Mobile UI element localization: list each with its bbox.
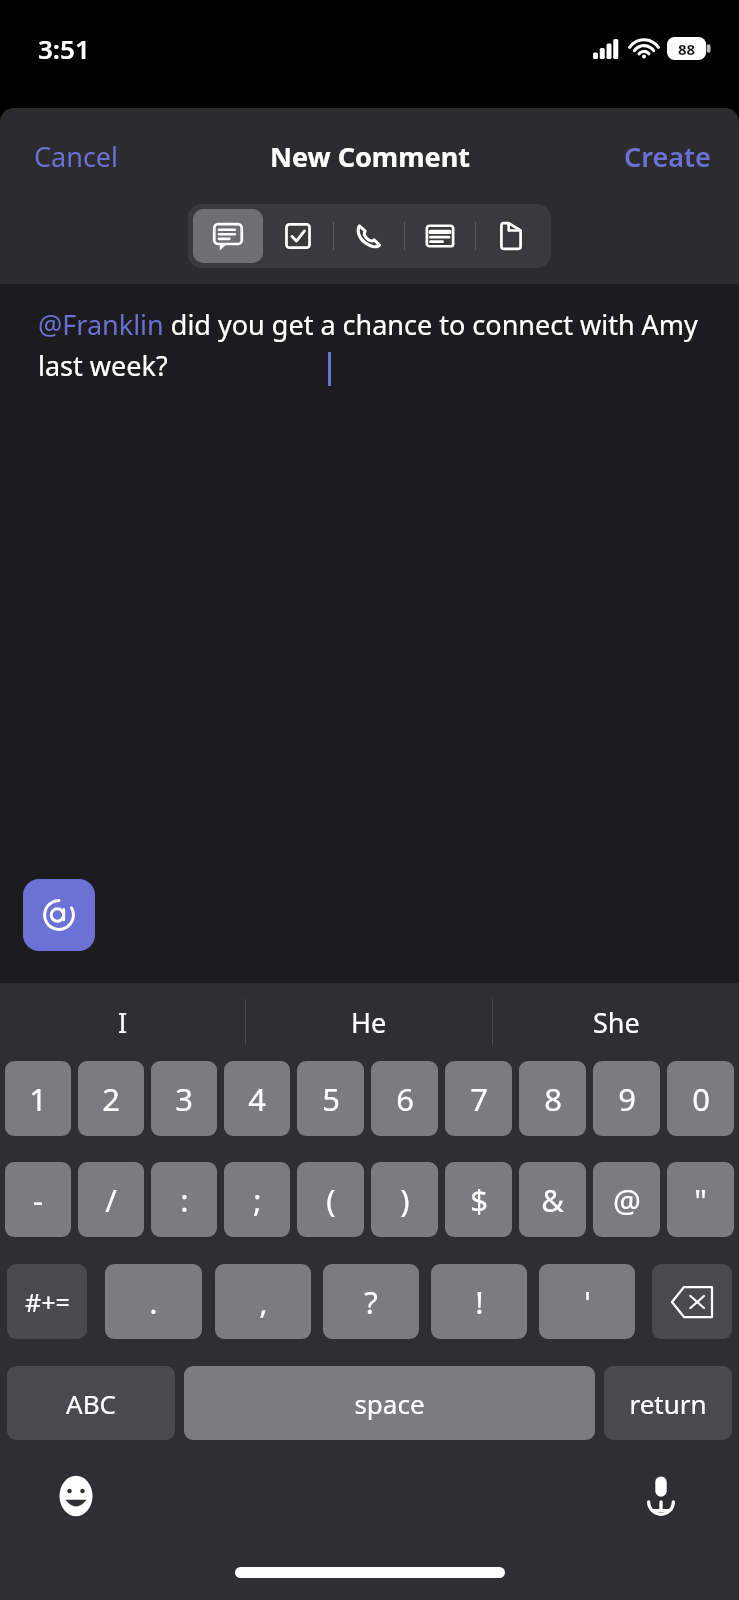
button[interactable]: / [78,1162,144,1237]
staticText: ! [475,1281,484,1323]
button[interactable]: #+= [7,1264,87,1339]
staticText: $ [470,1179,488,1221]
button[interactable]: 4 [224,1061,290,1136]
button[interactable]: 1 [5,1061,71,1136]
button[interactable]: $ [445,1162,512,1237]
staticText: / [105,1179,117,1221]
staticText: : [180,1179,189,1221]
staticText: ) [400,1179,410,1221]
staticText: ? [364,1281,378,1323]
staticText: 7 [470,1078,488,1120]
button[interactable]: 6 [371,1061,438,1136]
staticText: 5 [322,1078,340,1120]
staticText: , [259,1281,268,1323]
button[interactable]: Comment [193,209,263,263]
staticText: ' [584,1281,591,1323]
button[interactable]: 9 [593,1061,660,1136]
button[interactable]: ? [323,1264,419,1339]
staticText: space [354,1386,425,1421]
button[interactable]: Emoji [48,1468,104,1524]
staticText: 3 [175,1078,193,1120]
button[interactable]: ' [539,1264,635,1339]
staticText: 8 [544,1078,562,1120]
button[interactable]: ! [431,1264,527,1339]
button[interactable]: I [0,983,245,1061]
button[interactable]: Dictation [633,1466,689,1522]
button[interactable]: 8 [519,1061,586,1136]
button[interactable]: ABC [7,1366,175,1440]
button[interactable]: Backspace [652,1264,732,1339]
button[interactable]: ; [224,1162,290,1237]
button[interactable]: ) [371,1162,438,1237]
button[interactable]: 3 [151,1061,217,1136]
staticText: " [694,1179,707,1221]
button[interactable]: " [667,1162,734,1237]
button[interactable]: 7 [445,1061,512,1136]
staticText: He [351,1004,387,1041]
staticText: 6 [396,1078,414,1120]
button[interactable]: 0 [667,1061,734,1136]
button[interactable]: : [151,1162,217,1237]
button[interactable]: He [246,983,492,1061]
staticText: return [629,1386,707,1421]
staticText: New Comment [270,138,470,175]
staticText: ; [253,1179,262,1221]
button[interactable]: , [215,1264,311,1339]
button[interactable]: Mention [23,879,95,951]
button[interactable]: ( [297,1162,364,1237]
staticText: @Franklin did you get a chance to connec… [38,306,709,384]
button[interactable]: She [493,983,739,1061]
staticText: & [541,1179,564,1221]
button[interactable]: return [604,1366,732,1440]
button[interactable]: & [519,1162,586,1237]
button[interactable]: Call [334,209,404,263]
staticText: 0 [692,1078,710,1120]
button[interactable]: space [184,1366,595,1440]
button[interactable]: 5 [297,1061,364,1136]
staticText: ABC [66,1386,116,1421]
staticText: #+= [25,1285,70,1319]
button[interactable]: @ [593,1162,660,1237]
button[interactable]: Note [405,209,475,263]
staticText: 1 [29,1078,47,1120]
staticText: ( [326,1179,336,1221]
staticText: 3:51 [38,31,90,66]
staticText: - [33,1179,43,1221]
button[interactable]: - [5,1162,71,1237]
staticText: 88 [678,39,696,59]
button[interactable]: File [476,209,546,263]
button[interactable]: Task [263,209,333,263]
staticText: . [149,1281,158,1323]
button[interactable]: Create [596,126,739,187]
button[interactable]: . [105,1264,202,1339]
staticText: She [593,1004,640,1041]
staticText: Cancel [34,138,119,175]
staticText: I [118,1004,128,1041]
button[interactable]: 2 [78,1061,144,1136]
staticText: 4 [248,1078,266,1120]
button[interactable]: Cancel [0,126,153,187]
staticText: 2 [102,1078,120,1120]
staticText: 9 [618,1078,636,1120]
staticText: @ [613,1179,641,1221]
staticText: Create [624,138,711,175]
